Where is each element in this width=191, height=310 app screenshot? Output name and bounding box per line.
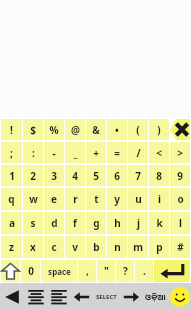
staticText: 6 — [114, 169, 120, 183]
button[interactable]: v — [65, 236, 85, 258]
button[interactable]: Align center — [24, 283, 47, 310]
staticText: ( — [136, 123, 140, 137]
button[interactable]: n — [107, 236, 127, 258]
button[interactable]: • — [107, 119, 127, 140]
button[interactable]: ଓଡ଼ିଆ — [142, 283, 168, 310]
staticText: b — [93, 240, 100, 254]
staticText: f — [73, 216, 77, 230]
button[interactable]: Enter — [154, 260, 190, 282]
button[interactable]: / — [128, 142, 148, 163]
button[interactable]: f — [65, 212, 85, 234]
button[interactable]: > — [170, 142, 190, 163]
button[interactable]: % — [44, 119, 64, 140]
button[interactable]: l — [170, 212, 190, 234]
staticText: ? — [123, 264, 128, 278]
button[interactable]: 5 — [86, 165, 106, 186]
button[interactable]: 1 — [1, 165, 22, 186]
button[interactable]: Move right — [119, 283, 142, 310]
button[interactable]: SELECT — [93, 283, 119, 310]
button[interactable]: o — [170, 188, 190, 210]
button[interactable]: ? — [116, 260, 134, 282]
button[interactable]: Previous — [0, 283, 24, 310]
staticText: SELECT — [96, 293, 117, 301]
button[interactable]: s — [23, 212, 43, 234]
button[interactable]: Align left — [47, 283, 70, 310]
button[interactable]: g — [86, 212, 106, 234]
staticText: d — [51, 216, 58, 230]
button[interactable]: _ — [65, 142, 85, 163]
button[interactable]: , — [78, 260, 96, 282]
button[interactable]: & — [86, 119, 106, 140]
staticText: " — [104, 264, 109, 278]
button[interactable]: + — [86, 142, 106, 163]
button[interactable]: 2 — [23, 165, 43, 186]
button[interactable]: i — [149, 188, 169, 210]
staticText: i — [158, 192, 161, 206]
staticText: + — [93, 146, 99, 160]
button[interactable]: w — [23, 188, 43, 210]
button[interactable]: - — [44, 142, 64, 163]
button[interactable]: 8 — [149, 165, 169, 186]
button[interactable]: h — [107, 212, 127, 234]
staticText: q — [8, 192, 15, 206]
button[interactable]: @ — [65, 119, 85, 140]
staticText: space — [48, 266, 71, 277]
button[interactable]: k — [149, 212, 169, 234]
button[interactable]: r — [65, 188, 85, 210]
staticText: , — [86, 264, 89, 278]
button[interactable]: a — [1, 212, 22, 234]
staticText: x — [30, 240, 36, 254]
button[interactable]: 3 — [44, 165, 64, 186]
button[interactable]: Shift — [1, 260, 20, 282]
button[interactable]: 6 — [107, 165, 127, 186]
staticText: a — [9, 216, 15, 230]
button[interactable]: < — [149, 142, 169, 163]
button[interactable]: q — [1, 188, 22, 210]
staticText: / — [136, 146, 141, 160]
staticText: ! — [10, 123, 13, 137]
button[interactable]: . — [135, 260, 153, 282]
button[interactable]: ! — [1, 119, 22, 140]
button[interactable]: e — [44, 188, 64, 210]
staticText: ; — [10, 146, 13, 160]
button[interactable]: Emoji — [168, 283, 191, 310]
button[interactable]: 9 — [170, 165, 190, 186]
staticText: h — [114, 216, 121, 230]
button[interactable]: p — [149, 236, 169, 258]
staticText: 8 — [156, 169, 162, 183]
button[interactable]: x — [23, 236, 43, 258]
button[interactable]: " — [97, 260, 115, 282]
button[interactable]: c — [44, 236, 64, 258]
button[interactable]: : — [23, 142, 43, 163]
button[interactable]: y — [107, 188, 127, 210]
staticText: w — [29, 192, 38, 206]
button[interactable]: Backspace — [170, 119, 190, 140]
button[interactable]: b — [86, 236, 106, 258]
button[interactable]: ) — [149, 119, 169, 140]
button[interactable]: j — [128, 212, 148, 234]
button[interactable]: t — [86, 188, 106, 210]
button[interactable]: Move left — [70, 283, 93, 310]
staticText: p — [156, 240, 163, 254]
button[interactable]: u — [128, 188, 148, 210]
staticText: _ — [73, 146, 78, 160]
button[interactable]: ( — [128, 119, 148, 140]
staticText: 3 — [51, 169, 57, 183]
button[interactable]: z — [1, 236, 22, 258]
staticText: ଓଡ଼ିଆ — [145, 291, 166, 302]
button[interactable]: 0 — [21, 260, 40, 282]
staticText: % — [49, 123, 59, 137]
button[interactable]: $ — [23, 119, 43, 140]
button[interactable]: = — [107, 142, 127, 163]
staticText: 4 — [72, 169, 78, 183]
button[interactable]: ; — [1, 142, 22, 163]
staticText: 9 — [177, 169, 183, 183]
button[interactable]: d — [44, 212, 64, 234]
button[interactable]: 7 — [128, 165, 148, 186]
button[interactable]: space — [41, 260, 77, 282]
button[interactable]: 4 — [65, 165, 85, 186]
staticText: z — [9, 240, 14, 254]
button[interactable]: # — [170, 236, 190, 258]
button[interactable]: m — [128, 236, 148, 258]
staticText: = — [114, 146, 120, 160]
